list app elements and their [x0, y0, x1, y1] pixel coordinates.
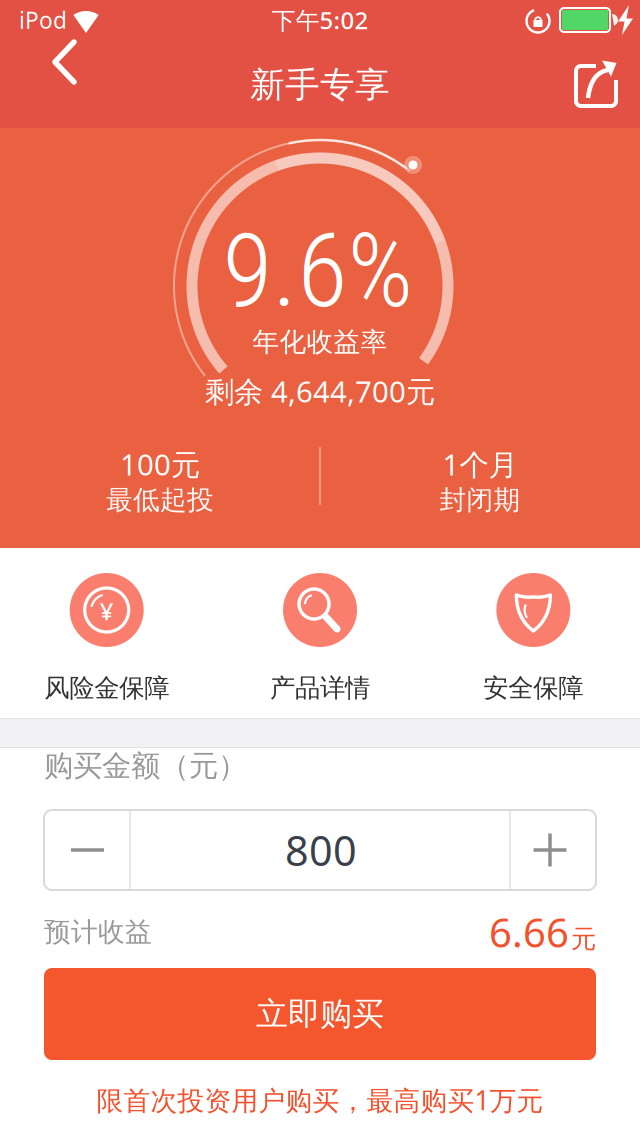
staticText: 立即购买	[256, 994, 384, 1034]
button[interactable]: 产品详情	[213, 548, 427, 718]
staticText: 元	[571, 923, 596, 955]
staticText: 预计收益	[44, 916, 152, 948]
staticText: 安全保障	[483, 672, 583, 703]
staticText: iPod	[19, 5, 67, 35]
staticText: 100元	[120, 444, 200, 483]
button[interactable]: 风险金保障	[0, 548, 213, 718]
staticText: 800	[285, 823, 357, 877]
button[interactable]: Back	[22, 40, 110, 128]
button[interactable]: 安全保障	[427, 548, 640, 718]
staticText: 购买金额（元）	[44, 748, 247, 784]
staticText: 风险金保障	[44, 672, 169, 703]
button[interactable]: 立即购买	[44, 968, 596, 1060]
staticText: 年化收益率	[252, 326, 387, 358]
staticText: 9.6%	[222, 211, 413, 331]
staticText: 限首次投资用户购买，最高购买1万元	[96, 1082, 543, 1118]
button[interactable]: 减少金额	[44, 810, 130, 890]
staticText: 下午5:02	[271, 4, 368, 36]
staticText: 1个月	[442, 444, 517, 483]
staticText: 产品详情	[270, 672, 370, 703]
staticText: 新手专享	[250, 64, 390, 106]
staticText: 封闭期	[439, 484, 520, 516]
button[interactable]: 增加金额	[510, 810, 596, 890]
button[interactable]: Share	[552, 40, 640, 128]
staticText: 剩余 4,644,700元	[205, 371, 435, 410]
staticText: ¥	[100, 595, 114, 627]
staticText: 6.66	[489, 905, 569, 958]
staticText: 最低起投	[106, 484, 214, 516]
